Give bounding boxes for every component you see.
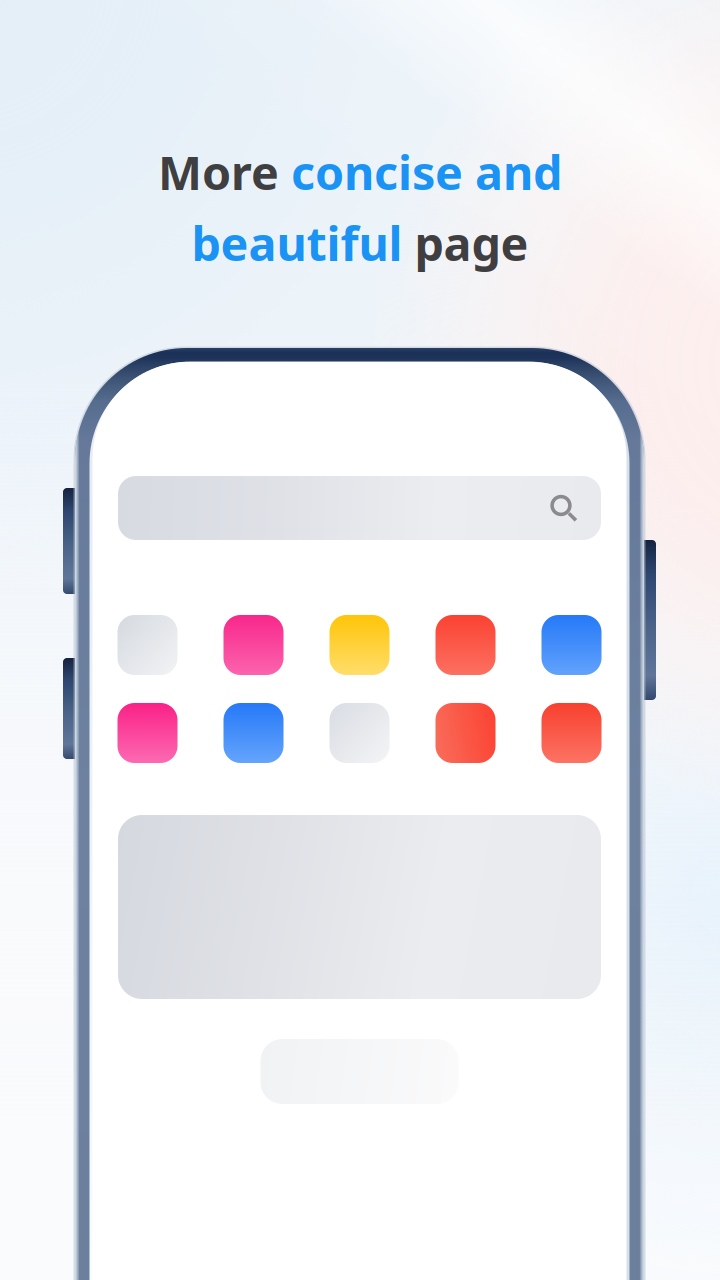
staticText: page [414,212,528,274]
button[interactable]: App [541,703,601,763]
button[interactable]: Search [118,476,601,540]
staticText: concise and [291,141,562,203]
button[interactable]: App [435,615,495,675]
button[interactable]: App [435,703,495,763]
button[interactable]: App [117,703,177,763]
button[interactable]: App [223,703,283,763]
button[interactable]: App [329,615,389,675]
button[interactable]: Featured card [118,815,601,999]
button[interactable]: App [223,615,283,675]
staticText: beautiful [191,212,414,274]
button[interactable]: App [117,615,177,675]
staticText: More [158,141,291,203]
button[interactable]: App [329,703,389,763]
button[interactable]: App [541,615,601,675]
